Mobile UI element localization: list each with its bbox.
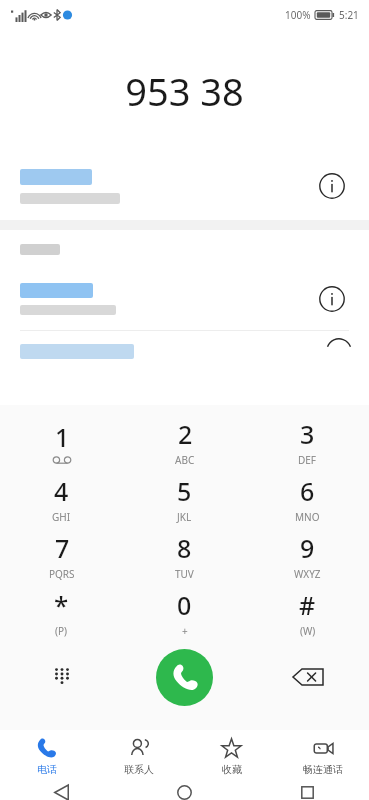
staticText: 5 bbox=[177, 474, 192, 508]
staticText: DEF bbox=[298, 453, 317, 467]
staticText: 9 bbox=[300, 531, 315, 565]
button[interactable]: Contact details bbox=[0, 152, 369, 220]
staticText: 1 bbox=[55, 420, 70, 454]
staticText: 3 bbox=[300, 417, 315, 451]
button[interactable]: Recent apps bbox=[246, 784, 369, 800]
staticText: 8 bbox=[177, 531, 192, 565]
staticText: 953 38 bbox=[125, 65, 244, 117]
button[interactable]: Contact details bbox=[0, 268, 369, 330]
staticText: 7 bbox=[55, 531, 70, 565]
button[interactable]: 7 bbox=[0, 527, 123, 584]
button[interactable]: 4 bbox=[0, 470, 123, 527]
staticText: 0 bbox=[177, 588, 192, 622]
staticText: 6 bbox=[300, 474, 315, 508]
button[interactable]: Hide keypad bbox=[0, 641, 123, 713]
staticText: TUV bbox=[175, 567, 194, 581]
button[interactable]: 8 bbox=[123, 527, 246, 584]
button[interactable]: Home bbox=[123, 784, 246, 800]
staticText: ABC bbox=[175, 453, 195, 467]
staticText: (W) bbox=[300, 624, 316, 638]
button[interactable]: Back bbox=[0, 784, 123, 800]
staticText: MNO bbox=[295, 510, 320, 524]
button[interactable]: * bbox=[0, 584, 123, 641]
button[interactable]: 5 bbox=[123, 470, 246, 527]
staticText: WXYZ bbox=[294, 567, 321, 581]
staticText: 收藏 bbox=[222, 763, 242, 776]
staticText: 2 bbox=[178, 417, 193, 451]
staticText: (P) bbox=[55, 624, 68, 638]
button[interactable]: Call bbox=[156, 649, 213, 706]
button[interactable]: 联系人 bbox=[93, 730, 185, 784]
staticText: 联系人 bbox=[124, 763, 154, 776]
staticText: 5:21 bbox=[339, 8, 359, 22]
button[interactable]: 电话 bbox=[0, 730, 93, 784]
staticText: JKL bbox=[177, 510, 192, 524]
button[interactable]: Contact details bbox=[312, 279, 352, 319]
button[interactable]: Backspace bbox=[246, 641, 369, 713]
staticText: 畅连通话 bbox=[303, 763, 343, 776]
button[interactable]: Contact details bbox=[312, 166, 352, 206]
button[interactable]: 2 bbox=[123, 413, 246, 470]
button[interactable]: 9 bbox=[246, 527, 369, 584]
staticText: * bbox=[54, 587, 69, 622]
staticText: GHI bbox=[52, 510, 71, 524]
button[interactable]: 1 bbox=[0, 413, 123, 470]
staticText: 电话 bbox=[37, 763, 57, 776]
button[interactable] bbox=[0, 331, 369, 371]
button[interactable]: 3 bbox=[246, 413, 369, 470]
staticText: # bbox=[299, 588, 316, 622]
staticText: + bbox=[182, 624, 188, 638]
button[interactable]: 畅连通话 bbox=[277, 730, 369, 784]
staticText: 100% bbox=[285, 8, 311, 22]
button[interactable]: 0 bbox=[123, 584, 246, 641]
staticText: 4 bbox=[54, 474, 69, 508]
staticText: PQRS bbox=[49, 567, 75, 581]
button[interactable]: # bbox=[246, 584, 369, 641]
button[interactable]: 收藏 bbox=[185, 730, 277, 784]
button[interactable]: 6 bbox=[246, 470, 369, 527]
